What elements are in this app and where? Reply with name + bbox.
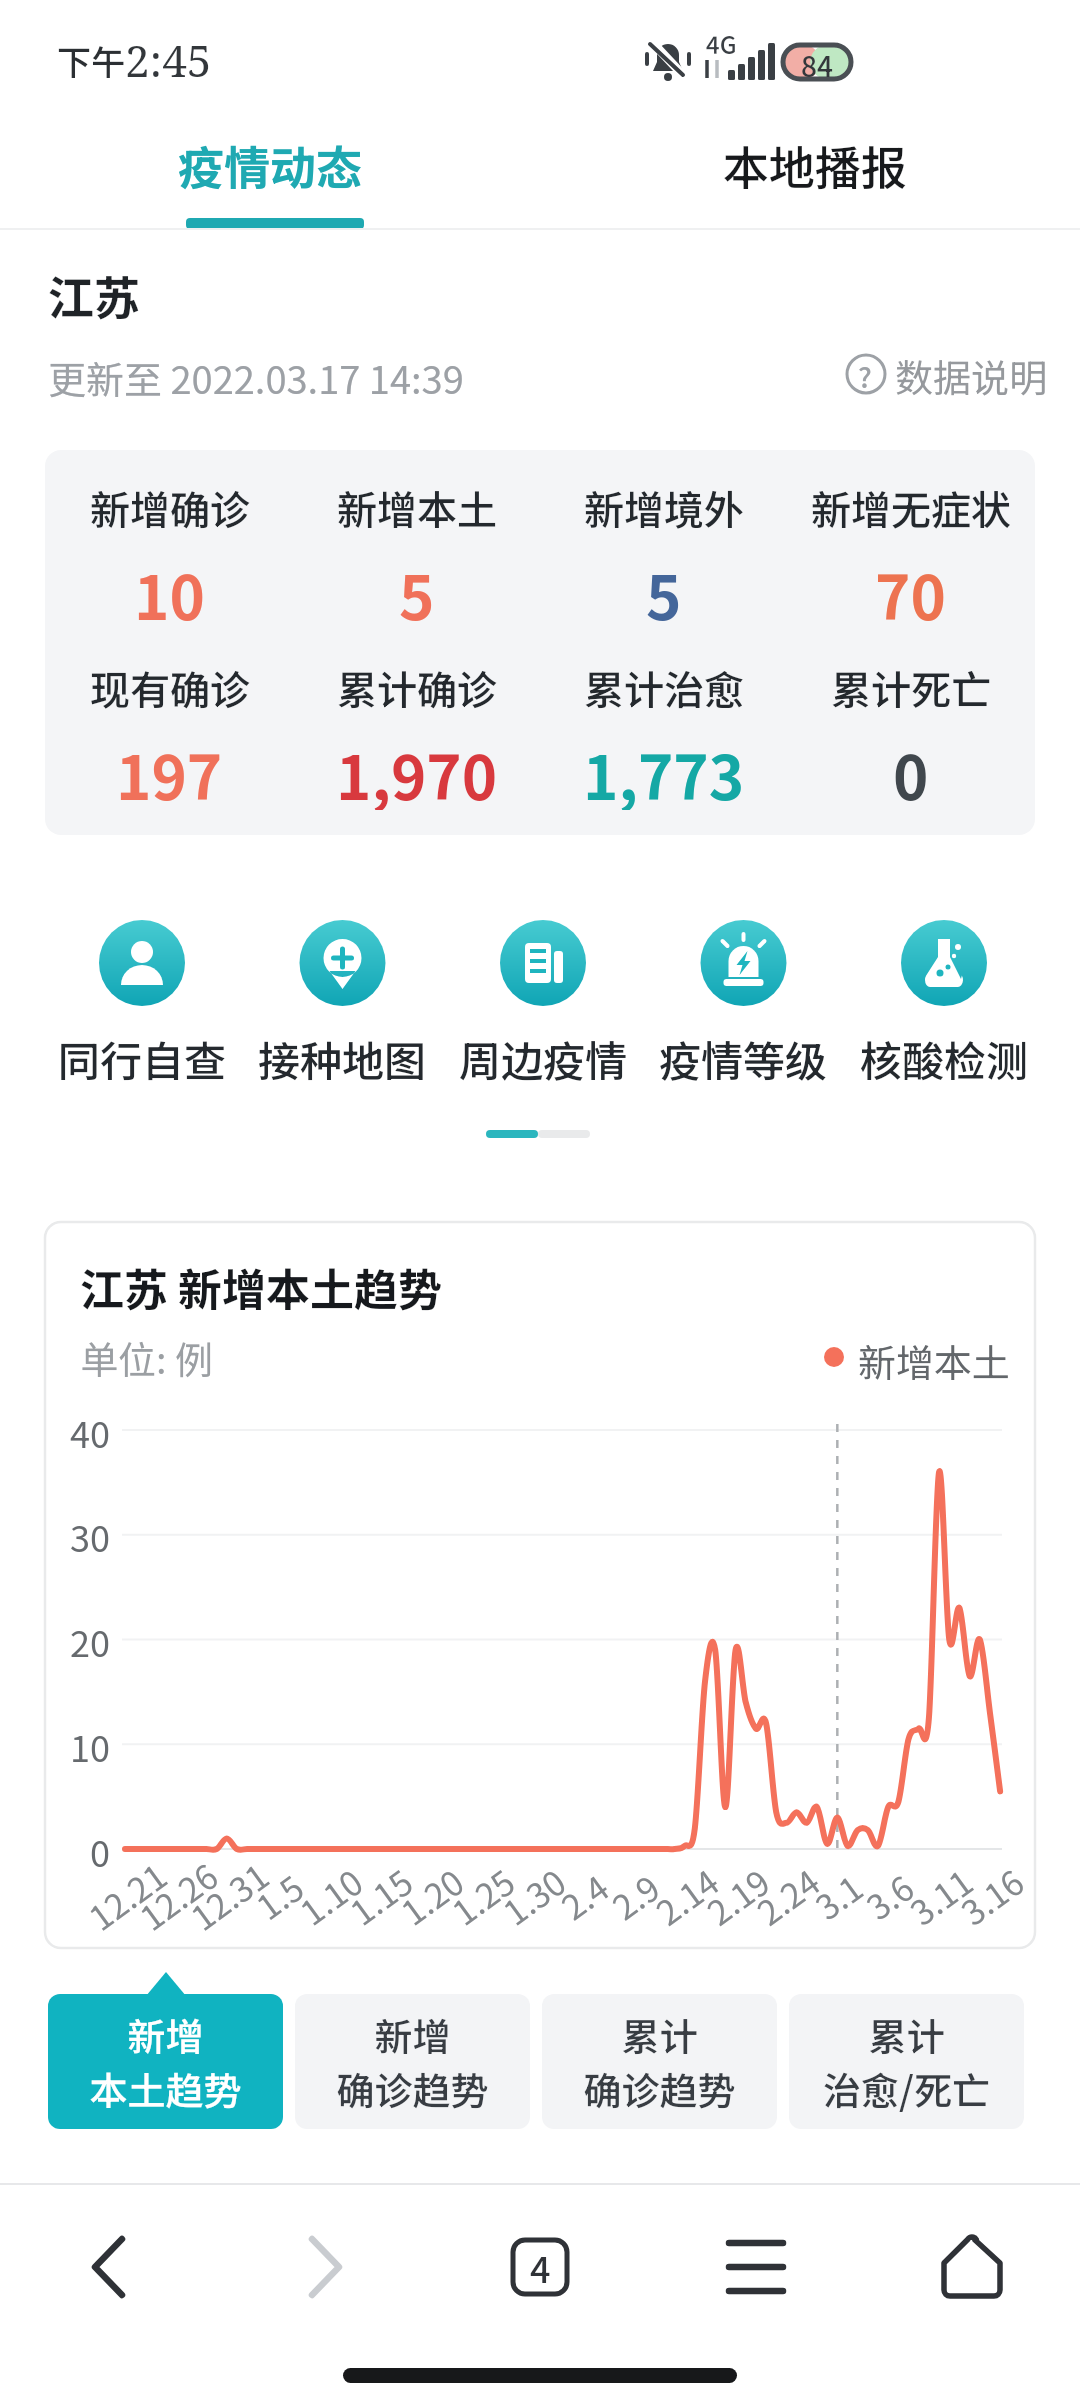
button[interactable]: 本地播报 [695,120,935,210]
staticText: 3.1 [805,1862,869,1926]
staticText: 0 [90,1825,110,1873]
staticText: 12.26 [129,1851,224,1936]
staticText: 本地播报 [723,132,907,199]
staticText: 12.31 [180,1851,275,1936]
staticText: 2.9 [602,1862,666,1926]
button[interactable] [648,2190,864,2350]
staticText: 现有确诊 [90,659,250,717]
button[interactable]: 70 [787,550,1034,630]
staticText: 70 [875,550,946,630]
staticText: 同行自查 [58,1028,227,1088]
staticText: 下午 [57,36,125,85]
staticText: 2:45 [125,30,212,90]
staticText: 疫情等级 [659,1028,828,1088]
staticText: 新增 确诊趋势 [336,2007,489,2116]
staticText: 5 [646,550,682,630]
staticText: 0 [893,730,929,810]
button[interactable] [0,2190,216,2350]
button[interactable]: 新增 本土趋势 [48,1994,283,2129]
button[interactable]: 数据说明 [840,345,1040,405]
staticText: 2.4 [551,1862,615,1926]
staticText: ? [858,356,872,397]
staticText: 1.20 [390,1856,470,1931]
staticText: 1.5 [246,1862,310,1926]
staticText: 周边疫情 [459,1028,628,1088]
button[interactable]: 197 [46,730,293,810]
button[interactable]: 疫情动态 [150,120,390,210]
staticText: 3.11 [899,1856,979,1931]
staticText: 1.25 [441,1856,521,1931]
button[interactable] [216,2190,432,2350]
staticText: 40 [70,1406,110,1454]
staticText: 2.19 [696,1856,776,1931]
staticText: 197 [116,730,223,810]
staticText: 1,773 [583,730,745,810]
staticText: 累计 治愈/死亡 [823,2007,990,2116]
staticText: 累计死亡 [831,659,991,717]
staticText: 2.24 [746,1856,826,1931]
staticText: 12.21 [78,1851,173,1936]
staticText: 1.10 [289,1856,369,1931]
button[interactable] [42,905,242,1095]
staticText: 10 [134,550,205,630]
staticText: 江苏 新增本土趋势 [80,1255,442,1319]
staticText: 10 [70,1720,110,1768]
staticText: 30 [70,1510,110,1558]
button[interactable]: 新增 确诊趋势 [295,1994,530,2129]
button[interactable]: 5 [540,550,787,630]
staticText: 核酸检测 [860,1028,1029,1088]
staticText: 新增无症状 [811,479,1011,537]
button[interactable]: 0 [787,730,1034,810]
staticText: 江苏 [48,262,140,329]
staticText: 疫情动态 [178,132,362,199]
staticText: 3.6 [856,1862,920,1926]
staticText: 累计确诊 [337,659,497,717]
staticText: 1.30 [492,1856,572,1931]
staticText: 1.15 [339,1856,419,1931]
button[interactable] [844,905,1044,1095]
staticText: 3.16 [950,1856,1030,1931]
button[interactable]: 10 [46,550,293,630]
staticText: 更新至 2022.03.17 14:39 [48,350,464,405]
staticText: 4G [706,26,737,61]
staticText: 新增本土 [858,1333,1011,1388]
button[interactable] [432,2190,648,2350]
button[interactable] [242,905,442,1095]
staticText: 新增 本土趋势 [89,2007,242,2116]
staticText: 单位: 例 [80,1330,214,1385]
button[interactable] [443,905,643,1095]
staticText: 累计治愈 [584,659,744,717]
staticText: 新增境外 [584,479,744,537]
staticText: 累计 确诊趋势 [583,2007,736,2116]
staticText: 1,970 [336,730,498,810]
button[interactable] [643,905,843,1095]
staticText: 数据说明 [895,348,1048,403]
staticText: 5 [399,550,435,630]
staticText: 4 [530,2241,551,2293]
button[interactable]: 1,773 [540,730,787,810]
staticText: 接种地图 [258,1028,427,1088]
staticText: 新增确诊 [90,479,250,537]
button[interactable]: 1,970 [293,730,540,810]
button[interactable] [864,2190,1080,2350]
button[interactable]: 累计 治愈/死亡 [789,1994,1024,2129]
button[interactable]: 累计 确诊趋势 [542,1994,777,2129]
staticText: 2.14 [645,1856,725,1931]
staticText: 20 [70,1615,110,1663]
staticText: 84 [801,45,833,79]
button[interactable]: 5 [293,550,540,630]
staticText: 新增本土 [337,479,497,537]
